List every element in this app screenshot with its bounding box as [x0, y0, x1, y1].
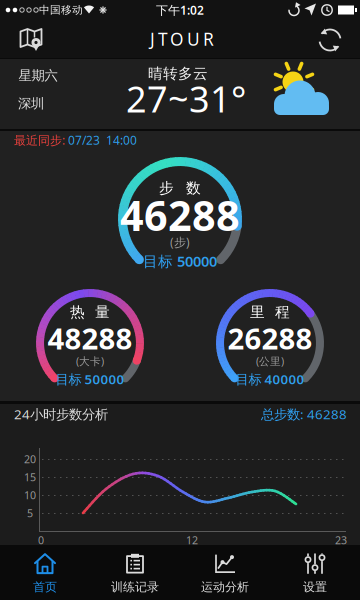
staticText: 46288: [120, 188, 240, 242]
staticText: (公里): [256, 354, 284, 368]
staticText: 星期六: [18, 67, 57, 84]
staticText: 运动分析: [201, 580, 249, 594]
button[interactable]: 运动分析: [180, 545, 270, 600]
staticText: 训练记录: [111, 580, 159, 594]
staticText: 最近同步:: [14, 132, 68, 148]
staticText: 48288: [47, 318, 132, 357]
staticText: 下午1:02: [156, 2, 204, 18]
staticText: (大卡): [76, 354, 104, 368]
staticText: 总步数: 46288: [261, 405, 347, 423]
staticText: 热 量: [70, 303, 110, 321]
staticText: 07/23 14:00: [68, 132, 137, 148]
button[interactable]: 首页: [0, 545, 90, 600]
staticText: 24小时步数分析: [14, 405, 108, 423]
staticText: 10: [24, 488, 36, 502]
staticText: 5: [27, 506, 33, 520]
button[interactable]: Refresh: [318, 28, 342, 52]
button[interactable]: 训练记录: [90, 545, 180, 600]
staticText: 设置: [303, 580, 327, 594]
staticText: 15: [24, 470, 36, 484]
staticText: (步): [170, 234, 190, 250]
staticText: JTOUR: [150, 27, 214, 50]
staticText: 晴转多云: [148, 64, 208, 82]
staticText: 26288: [227, 318, 312, 357]
staticText: 27~31°: [126, 75, 246, 122]
staticText: 目标 50000: [55, 370, 124, 388]
staticText: 首页: [33, 580, 57, 594]
staticText: 20: [24, 452, 36, 466]
staticText: 里 程: [250, 303, 290, 321]
staticText: 深圳: [18, 95, 44, 112]
staticText: 23: [335, 533, 347, 547]
staticText: 目标 40000: [235, 370, 304, 388]
staticText: 12: [186, 533, 198, 547]
staticText: 中国移动: [39, 3, 83, 16]
button[interactable]: Map: [18, 26, 44, 53]
staticText: 目标 50000: [143, 251, 217, 271]
staticText: 0: [38, 533, 44, 547]
button[interactable]: 设置: [270, 545, 360, 600]
staticText: 步 数: [159, 179, 201, 197]
